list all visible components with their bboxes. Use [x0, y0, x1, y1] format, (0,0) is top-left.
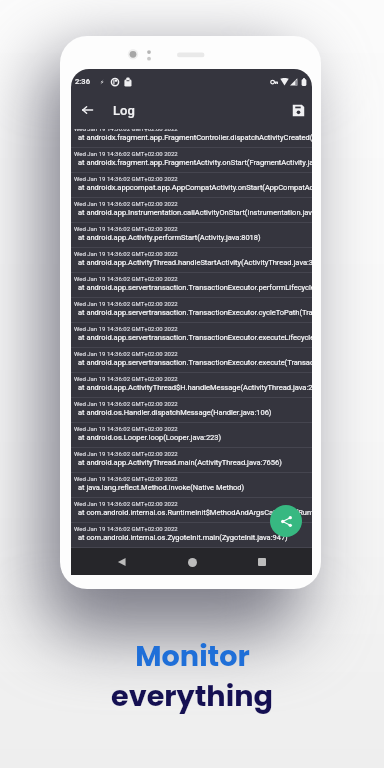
button[interactable]: Wed Jan 19 14:36:02 GMT+02:00 2022 [71, 448, 312, 473]
staticText: Wed Jan 19 14:36:02 GMT+02:00 2022 [74, 400, 178, 407]
button[interactable]: Wed Jan 19 14:36:02 GMT+02:00 2022 [71, 348, 312, 373]
staticText: at android.app.servertransaction.Transac… [78, 333, 312, 342]
staticText: at android.app.ActivityThread.handleStar… [78, 258, 312, 267]
button[interactable]: Back [71, 97, 104, 123]
staticText: at android.app.ActivityThread$H.handleMe… [78, 383, 312, 392]
staticText: Log [113, 103, 135, 118]
button[interactable]: Wed Jan 19 14:36:02 GMT+02:00 2022 [71, 523, 312, 543]
button[interactable]: Wed Jan 19 14:36:02 GMT+02:00 2022 [71, 498, 312, 523]
staticText: at com.android.internal.os.RuntimeInit$M… [78, 508, 312, 517]
staticText: at android.app.servertransaction.Transac… [78, 283, 312, 292]
staticText: Wed Jan 19 14:36:02 GMT+02:00 2022 [74, 375, 178, 382]
button[interactable]: Wed Jan 19 14:36:02 GMT+02:00 2022 [71, 273, 312, 298]
button[interactable]: Wed Jan 19 14:36:02 GMT+02:00 2022 [71, 248, 312, 273]
staticText: Wed Jan 19 14:36:02 GMT+02:00 2022 [74, 300, 178, 307]
staticText: Wed Jan 19 14:36:02 GMT+02:00 2022 [74, 225, 178, 232]
button[interactable]: Recent apps [242, 548, 282, 575]
staticText: Wed Jan 19 14:36:02 GMT+02:00 2022 [74, 500, 178, 507]
staticText: Wed Jan 19 14:36:02 GMT+02:00 2022 [74, 200, 178, 207]
button[interactable]: Wed Jan 19 14:36:02 GMT+02:00 2022 [71, 198, 312, 223]
button[interactable]: Wed Jan 19 14:36:02 GMT+02:00 2022 [71, 148, 312, 173]
staticText: Wed Jan 19 14:36:02 GMT+02:00 2022 [74, 475, 178, 482]
staticText: Wed Jan 19 14:36:02 GMT+02:00 2022 [74, 175, 178, 182]
button[interactable]: Wed Jan 19 14:36:02 GMT+02:00 2022 [71, 173, 312, 198]
button[interactable]: Wed Jan 19 14:36:02 GMT+02:00 2022 [71, 423, 312, 448]
staticText: at android.os.Looper.loop(Looper.java:22… [78, 433, 222, 442]
staticText: Wed Jan 19 14:36:02 GMT+02:00 2022 [74, 129, 178, 132]
button[interactable]: Back [101, 548, 141, 575]
staticText: at com.android.internal.os.ZygoteInit.ma… [78, 533, 288, 542]
staticText: at java.lang.reflect.Method.invoke(Nativ… [78, 483, 245, 492]
button[interactable]: Wed Jan 19 14:36:02 GMT+02:00 2022 [71, 298, 312, 323]
button[interactable]: Home [172, 548, 212, 575]
staticText: everything [111, 676, 273, 716]
staticText: at androidx.fragment.app.FragmentActivit… [78, 158, 312, 167]
staticText: Wed Jan 19 14:36:02 GMT+02:00 2022 [74, 425, 178, 432]
staticText: Wed Jan 19 14:36:02 GMT+02:00 2022 [74, 275, 178, 282]
button[interactable]: Wed Jan 19 14:36:02 GMT+02:00 2022 [71, 129, 312, 148]
staticText: Wed Jan 19 14:36:02 GMT+02:00 2022 [74, 325, 178, 332]
staticText: Monitor [135, 636, 250, 676]
button[interactable]: Save [285, 97, 312, 123]
staticText: Wed Jan 19 14:36:02 GMT+02:00 2022 [74, 525, 178, 532]
staticText: at androidx.fragment.app.FragmentControl… [78, 133, 312, 142]
staticText: Wed Jan 19 14:36:02 GMT+02:00 2022 [74, 350, 178, 357]
button[interactable]: Wed Jan 19 14:36:02 GMT+02:00 2022 [71, 223, 312, 248]
staticText: Wed Jan 19 14:36:02 GMT+02:00 2022 [74, 450, 178, 457]
button[interactable]: Share log [270, 505, 302, 537]
button[interactable]: Wed Jan 19 14:36:02 GMT+02:00 2022 [71, 323, 312, 348]
staticText: at android.app.ActivityThread.main(Activ… [78, 458, 282, 467]
staticText: at android.app.Activity.performStart(Act… [78, 233, 261, 242]
staticText: 2:36 [75, 77, 90, 86]
staticText: at androidx.appcompat.app.AppCompatActiv… [78, 183, 312, 192]
staticText: at android.app.servertransaction.Transac… [78, 308, 312, 317]
button[interactable]: Wed Jan 19 14:36:02 GMT+02:00 2022 [71, 398, 312, 423]
staticText: Wed Jan 19 14:36:02 GMT+02:00 2022 [74, 250, 178, 257]
staticText: at android.os.Handler.dispatchMessage(Ha… [78, 408, 272, 417]
button[interactable]: Wed Jan 19 14:36:02 GMT+02:00 2022 [71, 373, 312, 398]
staticText: at android.app.servertransaction.Transac… [78, 358, 312, 367]
staticText: at android.app.Instrumentation.callActiv… [78, 208, 312, 217]
button[interactable]: Wed Jan 19 14:36:02 GMT+02:00 2022 [71, 473, 312, 498]
staticText: Wed Jan 19 14:36:02 GMT+02:00 2022 [74, 150, 178, 157]
